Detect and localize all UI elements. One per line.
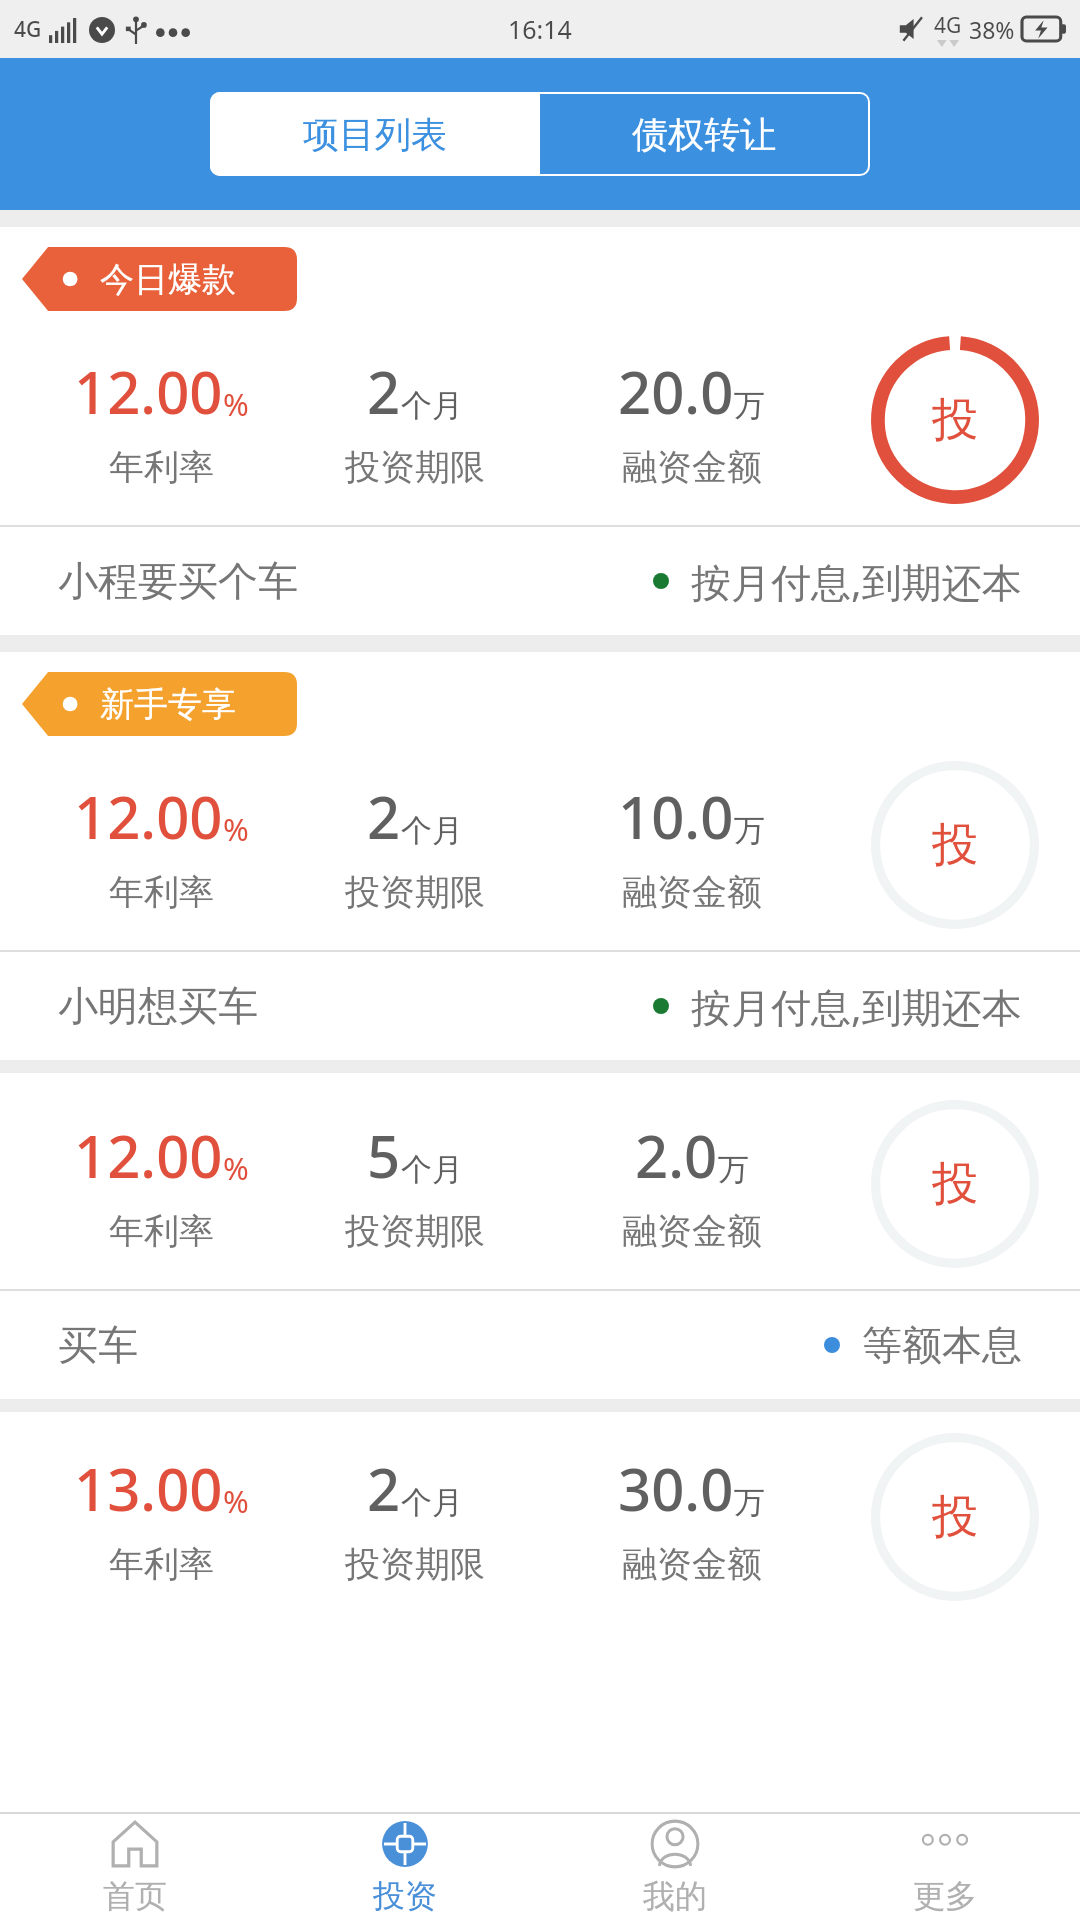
staticText: 投资期限	[345, 1209, 485, 1253]
staticText: 2.0	[635, 1116, 718, 1195]
staticText: 我的	[643, 1876, 707, 1916]
staticText: 按月付息,到期还本	[691, 554, 1022, 609]
staticText: 项目列表	[303, 112, 447, 157]
button[interactable]: 投资	[830, 740, 1080, 950]
staticText: 20.0	[618, 352, 734, 431]
staticText: 投	[932, 391, 978, 449]
staticText: 投	[932, 816, 978, 874]
staticText: 万	[734, 1483, 765, 1522]
staticText: 年利率	[109, 1542, 214, 1586]
staticText: 38%	[969, 14, 1015, 45]
staticText: 融资金额	[622, 1542, 762, 1586]
staticText: 4G	[14, 15, 42, 44]
staticText: 投资期限	[345, 870, 485, 914]
button[interactable]: 投资	[830, 1079, 1080, 1289]
staticText: 今日爆款	[100, 258, 236, 301]
button[interactable]: 今日爆款	[0, 227, 1080, 635]
staticText: 个月	[401, 1150, 463, 1189]
staticText: 30.0	[618, 1449, 734, 1528]
staticText: %	[223, 383, 249, 425]
staticText: 12.00	[74, 1116, 223, 1195]
staticText: 融资金额	[622, 1209, 762, 1253]
button[interactable]: 13.00	[0, 1412, 1080, 1812]
staticText: 2	[367, 1449, 401, 1528]
button[interactable]: 新手专享	[0, 652, 1080, 1060]
button[interactable]: 今日爆款	[22, 247, 297, 311]
staticText: 投	[932, 1155, 978, 1213]
button[interactable]: 更多	[810, 1814, 1080, 1920]
staticText: 年利率	[109, 1209, 214, 1253]
staticText: 个月	[401, 811, 463, 850]
staticText: 投资	[373, 1876, 437, 1916]
staticText: 5	[367, 1116, 401, 1195]
staticText: 4G	[934, 11, 962, 40]
staticText: 等额本息	[862, 1320, 1022, 1370]
staticText: 按月付息,到期还本	[691, 979, 1022, 1034]
staticText: 买车	[58, 1320, 138, 1370]
button[interactable]: 12.00	[0, 1073, 1080, 1399]
staticText: 融资金额	[622, 870, 762, 914]
staticText: %	[223, 808, 249, 850]
staticText: 个月	[401, 1483, 463, 1522]
staticText: 投资期限	[345, 445, 485, 489]
staticText: %	[223, 1480, 249, 1522]
staticText: 万	[734, 386, 765, 425]
staticText: 12.00	[74, 777, 223, 856]
staticText: 16:14	[508, 12, 572, 46]
staticText: 年利率	[109, 445, 214, 489]
staticText: 新手专享	[100, 683, 236, 726]
staticText: 小程要买个车	[58, 556, 298, 606]
staticText: %	[223, 1147, 249, 1189]
staticText: 小明想买车	[58, 981, 258, 1031]
staticText: 12.00	[74, 352, 223, 431]
button[interactable]: 首页	[0, 1814, 270, 1920]
staticText: 10.0	[618, 777, 734, 856]
button[interactable]: 新手专享	[22, 672, 297, 736]
staticText: 债权转让	[632, 112, 776, 157]
button[interactable]: 债权转让	[540, 94, 868, 174]
button[interactable]: 项目列表	[210, 92, 540, 176]
staticText: 投资期限	[345, 1542, 485, 1586]
staticText: 13.00	[74, 1449, 223, 1528]
staticText: 首页	[103, 1876, 167, 1916]
staticText: 年利率	[109, 870, 214, 914]
button[interactable]: 投资	[830, 315, 1080, 525]
staticText: 万	[718, 1150, 749, 1189]
staticText: 万	[734, 811, 765, 850]
button[interactable]: 我的	[540, 1814, 810, 1920]
staticText: 个月	[401, 386, 463, 425]
button[interactable]: 投资	[830, 1412, 1080, 1622]
staticText: 融资金额	[622, 445, 762, 489]
button[interactable]: 投资	[270, 1814, 540, 1920]
staticText: 投	[932, 1488, 978, 1546]
staticText: 2	[367, 352, 401, 431]
staticText: 2	[367, 777, 401, 856]
staticText: 更多	[913, 1876, 977, 1916]
